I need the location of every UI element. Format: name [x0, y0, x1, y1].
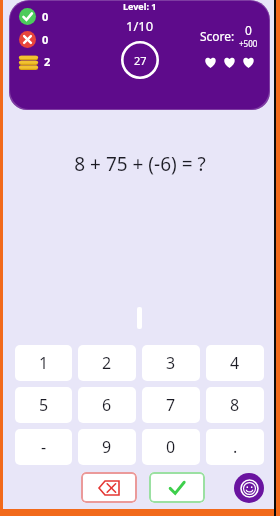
- staticText: 8: [230, 394, 240, 416]
- staticText: 5: [39, 394, 49, 416]
- staticText: 0: [245, 22, 252, 38]
- button[interactable]: 7: [142, 387, 200, 423]
- staticText: 0: [166, 436, 176, 458]
- button[interactable]: Hint: [234, 473, 264, 503]
- button[interactable]: 6: [78, 387, 136, 423]
- staticText: .: [233, 436, 238, 458]
- staticText: 1: [39, 352, 49, 374]
- button[interactable]: 8: [206, 387, 264, 423]
- button[interactable]: 4: [206, 345, 264, 381]
- staticText: 4: [230, 352, 240, 374]
- button[interactable]: 9: [78, 429, 136, 465]
- staticText: 27: [134, 53, 147, 68]
- staticText: 8 + 75 + (-6) = ?: [74, 151, 206, 177]
- staticText: 9: [102, 436, 112, 458]
- button[interactable]: .: [206, 429, 264, 465]
- button[interactable]: 0: [142, 429, 200, 465]
- staticText: 3: [166, 352, 176, 374]
- button[interactable]: 1: [15, 345, 72, 381]
- button[interactable]: -: [15, 429, 72, 465]
- staticText: Level: 1: [123, 0, 157, 12]
- staticText: 6: [102, 394, 112, 416]
- staticText: +500: [239, 38, 258, 49]
- button[interactable]: 2: [78, 345, 136, 381]
- staticText: 7: [166, 394, 176, 416]
- staticText: 0: [42, 32, 49, 47]
- staticText: 2: [102, 352, 112, 374]
- staticText: 2: [44, 54, 51, 69]
- button[interactable]: 5: [15, 387, 72, 423]
- button[interactable]: Backspace: [81, 472, 137, 503]
- button[interactable]: 3: [142, 345, 200, 381]
- staticText: -: [41, 436, 47, 458]
- staticText: 1/10: [126, 17, 154, 35]
- staticText: Score:: [200, 28, 235, 44]
- button[interactable]: Submit answer: [149, 472, 205, 503]
- staticText: 0: [42, 9, 49, 24]
